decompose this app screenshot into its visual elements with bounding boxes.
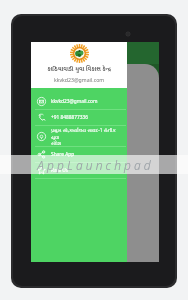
- staticText: A p p L a u n c h p a d: [37, 157, 151, 173]
- staticText: પ્રમુખ સો,કાર્યાલય સાવદ-1 રોનીક યુવા સંદ…: [51, 127, 124, 146]
- button[interactable]: Rate Us: [31, 163, 127, 178]
- staticText: Share App: [51, 151, 124, 158]
- staticText: kkvkd23@gmail.com: [31, 76, 127, 83]
- staticText: kkvkd23@gmail.com: [51, 98, 124, 105]
- staticText: કાઠિયાવાડી યુવા વિકાસ કેન્દ્ર: [31, 64, 127, 74]
- staticText: Rate Us: [51, 167, 124, 174]
- button[interactable]: Call: [31, 110, 127, 125]
- button[interactable]: Share App: [31, 147, 127, 162]
- button[interactable]: Address: [31, 126, 127, 146]
- staticText: +91 8488877336: [51, 114, 124, 121]
- button[interactable]: Email: [31, 94, 127, 109]
